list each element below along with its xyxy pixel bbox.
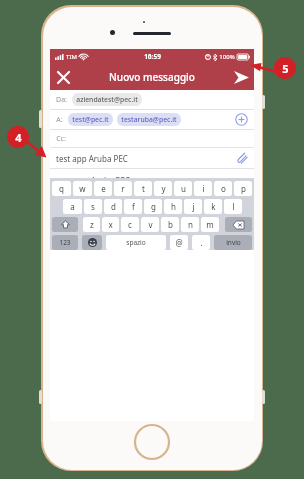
- button[interactable]: Chiudi: [50, 64, 76, 90]
- button[interactable]: s: [84, 199, 102, 214]
- button[interactable]: test app Aruba PEC: [50, 169, 254, 280]
- button[interactable]: Allega: [237, 153, 248, 164]
- button[interactable]: z: [83, 217, 100, 232]
- staticText: c: [128, 219, 132, 230]
- button[interactable]: d: [104, 199, 122, 214]
- button[interactable]: w: [73, 181, 92, 196]
- button[interactable]: i: [194, 181, 212, 196]
- staticText: 5: [282, 61, 289, 76]
- button[interactable]: l: [224, 199, 242, 214]
- button[interactable]: spazio: [106, 235, 166, 250]
- button[interactable]: h: [164, 199, 182, 214]
- button[interactable]: k: [204, 199, 222, 214]
- button[interactable]: .: [192, 235, 210, 250]
- button[interactable]: j: [184, 199, 202, 214]
- button[interactable]: c: [121, 217, 139, 232]
- button[interactable]: y: [154, 181, 172, 196]
- staticText: m: [206, 219, 214, 230]
- staticText: l: [232, 201, 235, 212]
- staticText: Cc:: [56, 134, 66, 144]
- staticText: aziendatest@pec.it: [76, 95, 138, 104]
- staticText: invio: [226, 238, 241, 247]
- button[interactable]: Emoji: [82, 235, 102, 250]
- staticText: A:: [56, 115, 63, 125]
- staticText: o: [221, 183, 226, 194]
- staticText: x: [108, 219, 113, 230]
- staticText: test app Aruba PEC: [58, 175, 130, 186]
- staticText: 16:59: [144, 52, 161, 61]
- staticText: j: [192, 201, 195, 212]
- staticText: i: [202, 183, 205, 194]
- button[interactable]: Numeri: [52, 235, 78, 250]
- button[interactable]: Cc:: [50, 130, 254, 147]
- button[interactable]: Maiusc: [52, 217, 78, 232]
- button[interactable]: n: [181, 217, 199, 232]
- button[interactable]: test app Aruba PEC: [50, 148, 254, 168]
- button[interactable]: u: [174, 181, 192, 196]
- staticText: z: [90, 219, 94, 230]
- button[interactable]: g: [144, 199, 162, 214]
- button[interactable]: f: [124, 199, 142, 214]
- button[interactable]: m: [201, 217, 219, 232]
- button[interactable]: @: [170, 235, 188, 250]
- staticText: e: [101, 183, 106, 194]
- staticText: Nuovo messaggio: [109, 70, 195, 84]
- button[interactable]: Da:: [50, 90, 254, 109]
- staticText: Da:: [56, 95, 67, 105]
- staticText: a: [70, 201, 75, 212]
- button[interactable]: e: [94, 181, 112, 196]
- staticText: test app Aruba PEC: [56, 153, 128, 164]
- staticText: s: [91, 201, 95, 212]
- button[interactable]: Cancella: [225, 217, 252, 232]
- button[interactable]: Aggiungi contatto: [235, 113, 248, 126]
- staticText: d: [111, 201, 116, 212]
- button[interactable]: b: [161, 217, 179, 232]
- staticText: test@pec.it: [72, 115, 109, 124]
- staticText: t: [142, 183, 145, 194]
- staticText: p: [241, 183, 246, 194]
- button[interactable]: q: [52, 181, 71, 196]
- staticText: u: [181, 183, 186, 194]
- button[interactable]: x: [102, 217, 119, 232]
- staticText: @: [175, 237, 183, 248]
- staticText: h: [171, 201, 176, 212]
- staticText: 123: [59, 238, 71, 247]
- staticText: r: [121, 183, 125, 194]
- button[interactable]: p: [234, 181, 252, 196]
- staticText: q: [59, 183, 64, 194]
- button[interactable]: o: [214, 181, 232, 196]
- staticText: 4: [15, 130, 22, 145]
- staticText: b: [168, 219, 173, 230]
- staticText: k: [211, 201, 216, 212]
- button[interactable]: A:: [50, 110, 254, 129]
- staticText: v: [148, 219, 153, 230]
- staticText: 100%: [219, 53, 235, 61]
- button[interactable]: t: [134, 181, 152, 196]
- staticText: TIM: [66, 53, 77, 61]
- staticText: g: [151, 201, 156, 212]
- button[interactable]: r: [114, 181, 132, 196]
- button[interactable]: a: [63, 199, 82, 214]
- staticText: w: [79, 183, 86, 194]
- button[interactable]: Invio: [214, 235, 252, 250]
- staticText: testaruba@pec.it: [121, 115, 177, 124]
- staticText: y: [161, 183, 166, 194]
- staticText: n: [188, 219, 193, 230]
- staticText: spazio: [126, 238, 146, 247]
- staticText: .: [200, 237, 203, 248]
- staticText: f: [132, 201, 135, 212]
- button[interactable]: v: [141, 217, 159, 232]
- button[interactable]: Invia: [228, 64, 254, 90]
